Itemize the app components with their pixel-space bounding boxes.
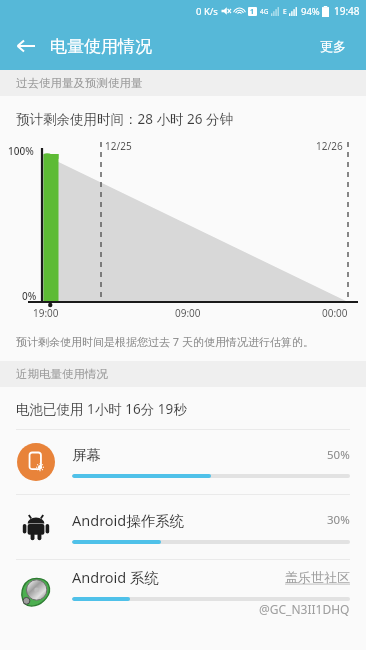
button[interactable]: 屏幕 [0, 430, 366, 494]
button[interactable]: Android 系统 [0, 560, 366, 624]
staticText: E [283, 7, 287, 16]
staticText: 00:00 [322, 306, 348, 320]
staticText: Android操作系统 [72, 510, 185, 530]
staticText: 09:00 [175, 306, 201, 320]
staticText: 19:00 [33, 306, 59, 320]
staticText: 近期电量使用情况 [16, 367, 108, 381]
staticText: 1 [250, 7, 255, 16]
staticText: 50% [327, 447, 350, 463]
staticText: @GC_N3II1DHQ [259, 601, 350, 617]
button[interactable]: Back [8, 28, 44, 64]
staticText: 屏幕 [72, 446, 101, 464]
button[interactable]: Android操作系统 [0, 495, 366, 559]
staticText: 更多 [320, 38, 346, 54]
staticText: 0% [22, 289, 37, 303]
staticText: 电池已使用 1小时 16分 19秒 [16, 400, 187, 418]
staticText: 12/26 [316, 139, 343, 153]
button[interactable]: 更多 [314, 32, 352, 60]
staticText: 19:48 [334, 4, 360, 18]
staticText: 4G [260, 7, 269, 16]
staticText: 预计剩余使用时间：28 小时 26 分钟 [16, 110, 233, 128]
staticText: 30% [327, 512, 350, 528]
staticText: 100% [8, 144, 34, 158]
staticText: 0 K/s [196, 5, 218, 18]
staticText: Android 系统 [72, 567, 160, 587]
staticText: 电量使用情况 [50, 36, 152, 57]
staticText: 过去使用量及预测使用量 [16, 76, 143, 90]
staticText: 94% [301, 5, 320, 18]
staticText: 预计剩余使用时间是根据您过去 7 天的使用情况进行估算的。 [16, 334, 315, 349]
staticText: 盖乐世社区 [285, 569, 350, 585]
staticText: 12/25 [105, 139, 132, 153]
